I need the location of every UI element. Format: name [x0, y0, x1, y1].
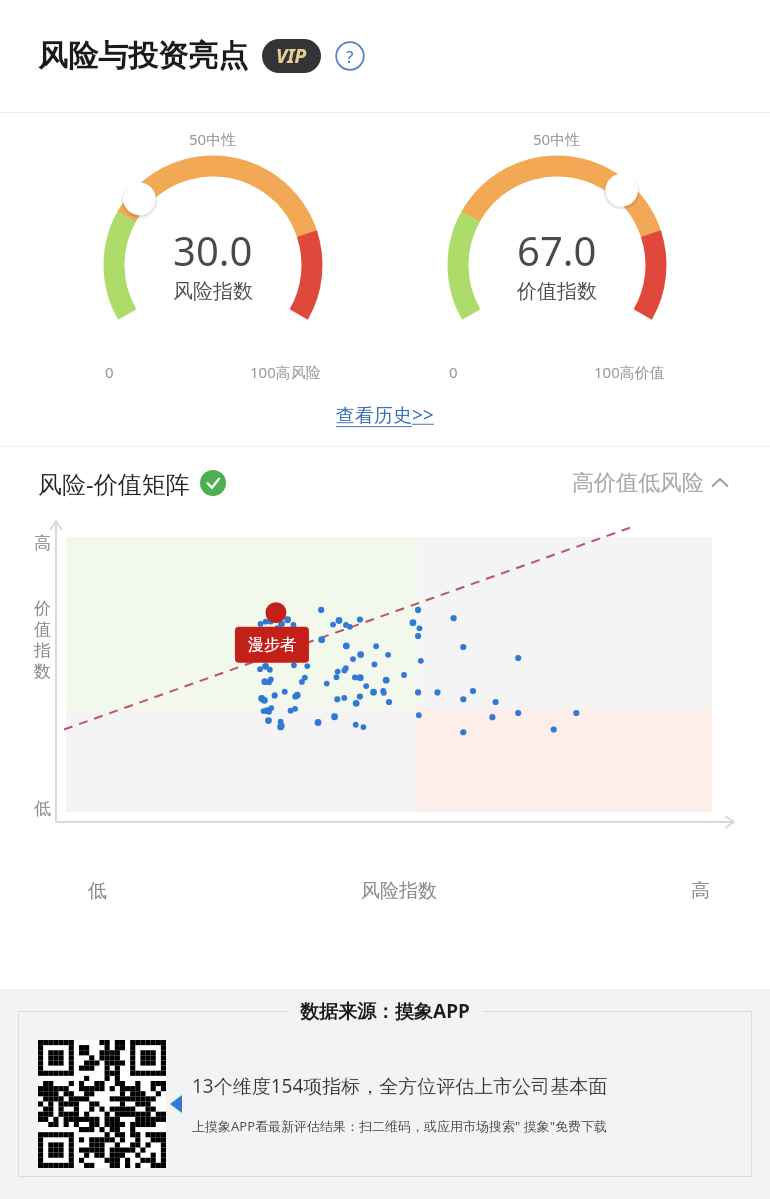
staticText: 低 [34, 798, 51, 819]
staticText: 50中性 [189, 129, 237, 149]
staticText: ? [346, 45, 354, 68]
staticText: 风险-价值矩阵 [38, 467, 190, 500]
staticText: 100高价值 [594, 362, 665, 382]
staticText: 漫步者 [248, 635, 296, 655]
staticText: 上摸象APP看最新评估结果：扫二维码，或应用市场搜索" 摸象"免费下载 [192, 1117, 608, 1135]
staticText: 50中性 [533, 129, 581, 149]
staticText: 风险与投资亮点 [38, 37, 248, 75]
button[interactable]: VIP [262, 39, 321, 73]
staticText: 风险指数 [173, 279, 253, 304]
staticText: 值 [34, 619, 51, 640]
staticText: 100高风险 [250, 362, 321, 382]
staticText: 高价值低风险 [572, 469, 704, 497]
staticText: 价 [34, 598, 51, 619]
staticText: 数 [34, 661, 51, 682]
staticText: VIP [276, 43, 307, 69]
staticText: 30.0 [173, 223, 253, 277]
staticText: 0 [105, 362, 114, 382]
staticText: 0 [449, 362, 458, 382]
staticText: 67.0 [517, 223, 597, 277]
staticText: 高 [691, 879, 710, 903]
button[interactable]: 帮助 [335, 41, 365, 71]
staticText: 风险指数 [361, 879, 437, 903]
staticText: 13个维度154项指标，全方位评估上市公司基本面 [192, 1073, 608, 1099]
staticText: 低 [88, 879, 107, 903]
staticText: 数据来源：摸象APP [300, 998, 470, 1024]
button[interactable]: 查看历史>> [326, 398, 444, 432]
button[interactable]: 高价值低风险 [568, 465, 732, 501]
staticText: 查看历史>> [336, 402, 434, 428]
staticText: 指 [34, 640, 51, 661]
staticText: 高 [34, 533, 51, 554]
staticText: 价值指数 [517, 279, 597, 304]
